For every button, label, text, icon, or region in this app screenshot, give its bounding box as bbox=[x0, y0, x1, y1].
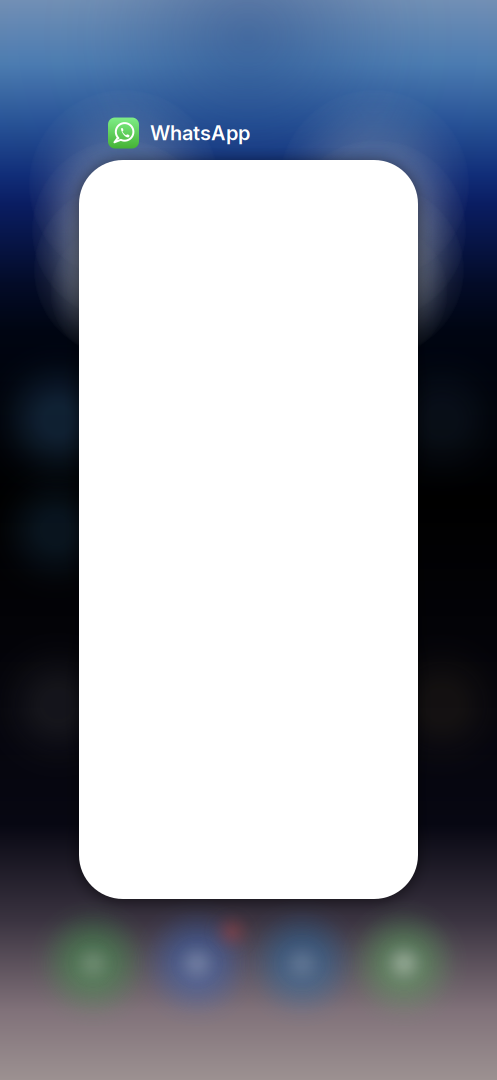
staticText: WhatsApp bbox=[150, 121, 250, 145]
button[interactable]: WhatsApp bbox=[108, 116, 448, 150]
